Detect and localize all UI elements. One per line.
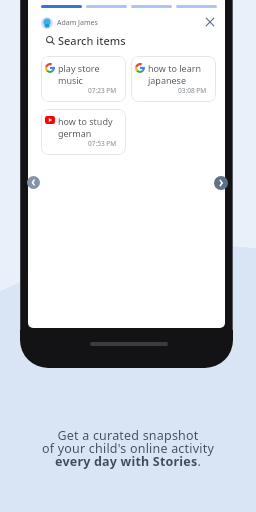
staticText: Search items <box>58 33 126 48</box>
staticText: Get a curated snapshot of your child's o… <box>0 427 256 470</box>
button[interactable]: play store <box>41 56 126 102</box>
button[interactable] <box>27 176 40 189</box>
staticText: 07:53 PM <box>88 139 117 148</box>
staticText: how to study <box>58 115 113 127</box>
staticText: play store <box>58 62 100 74</box>
staticText: japanese <box>148 74 186 86</box>
staticText: Adam James <box>57 18 98 28</box>
staticText: 07:23 PM <box>88 86 117 95</box>
staticText: german <box>58 127 92 139</box>
staticText: how to learn <box>148 62 202 74</box>
button[interactable]: how to study <box>41 109 126 155</box>
button[interactable]: how to learn <box>131 56 216 102</box>
button[interactable] <box>214 176 228 190</box>
staticText: music <box>58 74 83 86</box>
button[interactable]: Search items <box>46 33 126 48</box>
button[interactable] <box>203 15 217 29</box>
staticText: 03:08 PM <box>178 86 207 95</box>
